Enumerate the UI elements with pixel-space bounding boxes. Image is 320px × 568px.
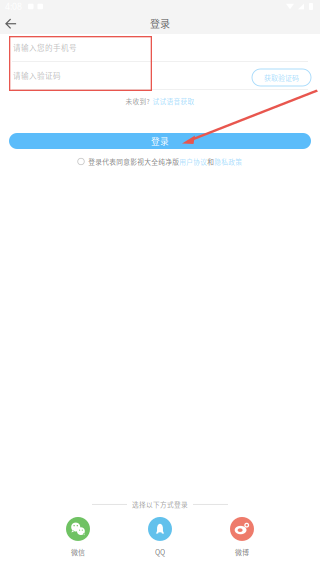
staticText: 和 [207,157,214,166]
staticText: 登录代表同意影视大全纯净版 [88,157,179,166]
staticText: QQ [155,547,165,557]
staticText: 微信 [71,547,85,557]
button[interactable]: 微信 [47,517,109,557]
button[interactable]: 获取验证码 [252,65,311,86]
button[interactable]: 试试语音获取 [152,96,194,106]
button[interactable]: 登录 [0,133,320,149]
button[interactable]: Back [0,13,21,34]
staticText: 登录 [150,16,170,31]
staticText: 获取验证码 [264,72,299,82]
staticText: 隐私政策 [214,157,242,166]
staticText: 用户协议 [179,157,207,166]
button[interactable]: 用户协议 [179,157,207,166]
staticText: 未收到? [125,96,149,106]
staticText: 微博 [235,547,249,557]
button[interactable]: QQ [129,517,191,557]
button[interactable]: 微博 [211,517,273,557]
staticText: 登录 [151,135,169,147]
staticText: 请输入您的手机号 [13,42,77,53]
staticText: 选择以下方式登录 [132,500,188,509]
staticText: 请输入验证码 [13,70,61,81]
button[interactable]: 隐私政策 [214,157,242,166]
button[interactable]: Agree to terms [78,158,84,165]
staticText: 试试语音获取 [152,96,194,106]
